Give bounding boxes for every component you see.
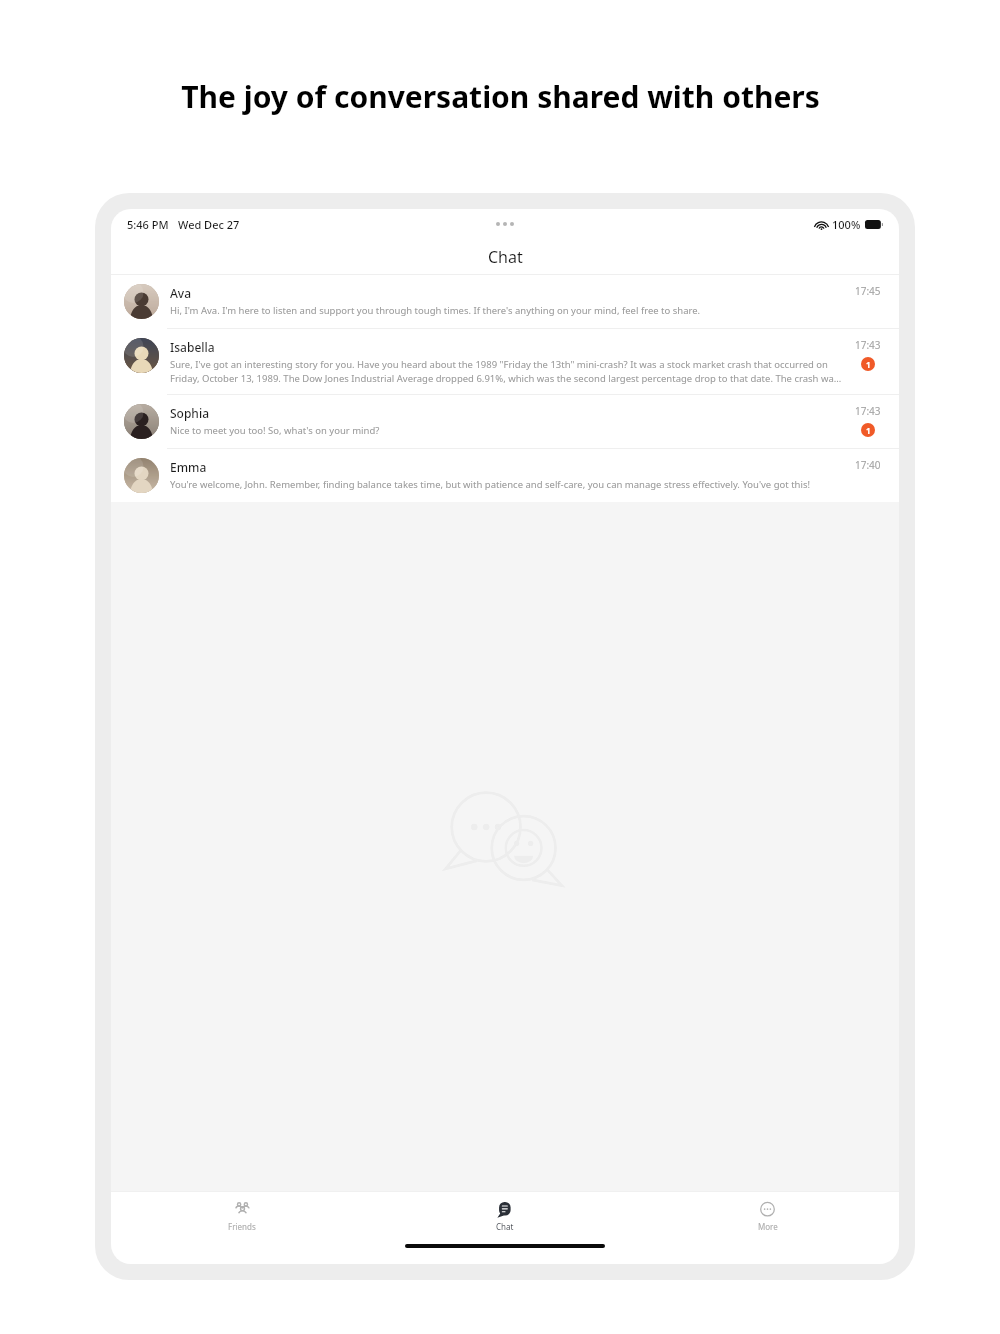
other: Chat bbox=[496, 1201, 513, 1218]
staticText: Chat bbox=[488, 246, 523, 268]
staticText: Sure, I've got an interesting story for … bbox=[170, 358, 843, 385]
button[interactable]: Chat bbox=[373, 1192, 636, 1240]
staticText: Isabella bbox=[170, 339, 215, 355]
staticText: Ava bbox=[170, 285, 192, 301]
staticText: 17:43 bbox=[855, 338, 881, 352]
staticText: 17:45 bbox=[855, 284, 881, 298]
staticText: Wed Dec 27 bbox=[178, 217, 240, 232]
staticText: Friends bbox=[228, 1221, 256, 1232]
button[interactable]: Ava bbox=[111, 275, 899, 328]
staticText: 100% bbox=[832, 217, 861, 232]
staticText: 17:40 bbox=[855, 458, 881, 472]
staticText: You're welcome, John. Remember, finding … bbox=[170, 478, 811, 491]
other: Friends bbox=[234, 1201, 251, 1218]
staticText: 1 bbox=[866, 425, 871, 436]
staticText: More bbox=[758, 1221, 778, 1232]
button[interactable]: Isabella bbox=[111, 329, 899, 394]
button[interactable]: More bbox=[636, 1192, 899, 1240]
button[interactable]: Emma bbox=[111, 449, 899, 502]
staticText: Hi, I'm Ava. I'm here to listen and supp… bbox=[170, 304, 701, 317]
button[interactable]: Friends bbox=[111, 1192, 373, 1240]
other: More bbox=[759, 1201, 776, 1218]
staticText: Emma bbox=[170, 459, 207, 475]
staticText: The joy of conversation shared with othe… bbox=[181, 76, 820, 117]
staticText: Nice to meet you too! So, what's on your… bbox=[170, 424, 380, 437]
button[interactable]: Sophia bbox=[111, 395, 899, 448]
staticText: Sophia bbox=[170, 405, 210, 421]
staticText: 5:46 PM bbox=[127, 217, 169, 232]
staticText: 17:43 bbox=[855, 404, 881, 418]
staticText: Chat bbox=[496, 1221, 514, 1232]
staticText: 1 bbox=[866, 359, 871, 370]
